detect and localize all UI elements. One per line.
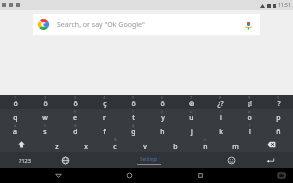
button[interactable]: ?123: [0, 152, 50, 168]
staticText: ñ: [276, 127, 281, 137]
button[interactable]: Home: [116, 168, 142, 183]
staticText: ð: [74, 123, 77, 128]
button[interactable]: š: [30, 123, 60, 137]
button[interactable]: 0: [264, 95, 293, 109]
staticText: s: [43, 127, 47, 137]
button[interactable]: á: [0, 123, 30, 137]
staticText: ō: [73, 99, 78, 109]
staticText: 2: [44, 95, 47, 100]
staticText: ü: [190, 109, 193, 114]
staticText: Settings: [140, 156, 158, 162]
staticText: 3: [74, 95, 77, 100]
button[interactable]: z: [42, 137, 71, 152]
button[interactable]: w: [30, 109, 60, 123]
button[interactable]: €: [60, 109, 90, 123]
button[interactable]: ń: [190, 137, 220, 152]
staticText: €: [74, 109, 77, 114]
button[interactable]: 1: [0, 95, 30, 109]
button[interactable]: f: [90, 123, 119, 137]
staticText: 9: [248, 95, 251, 100]
staticText: ŏ: [160, 99, 165, 109]
staticText: ó: [13, 99, 18, 109]
button[interactable]: 8: [206, 95, 235, 109]
staticText: í: [220, 109, 222, 114]
button[interactable]: Enter: [247, 152, 293, 168]
button[interactable]: í: [206, 109, 235, 123]
staticText: ?123: [19, 157, 31, 164]
staticText: i: [220, 113, 222, 123]
staticText: c: [113, 142, 117, 152]
staticText: ?: [277, 99, 281, 109]
button[interactable]: 3: [60, 95, 90, 109]
staticText: †: [132, 109, 135, 114]
button[interactable]: 6: [148, 95, 177, 109]
button[interactable]: Recent apps: [187, 168, 213, 183]
staticText: y: [161, 113, 165, 123]
button[interactable]: Voice search: [242, 19, 254, 31]
staticText: q: [13, 113, 18, 123]
staticText: m: [232, 142, 239, 152]
staticText: ô: [131, 99, 136, 109]
button[interactable]: &: [100, 137, 130, 152]
staticText: h: [160, 127, 165, 137]
staticText: Search, or say "Ok Google": [57, 20, 145, 30]
button[interactable]: q: [0, 109, 30, 123]
button[interactable]: ÿ: [148, 109, 177, 123]
button[interactable]: 5: [119, 95, 148, 109]
staticText: 8: [219, 95, 222, 100]
button[interactable]: Change language: [50, 152, 81, 168]
button[interactable]: 9: [235, 95, 264, 109]
button[interactable]: Shift: [0, 137, 42, 152]
staticText: 1: [14, 95, 17, 100]
button[interactable]: 2: [30, 95, 60, 109]
staticText: á: [14, 123, 17, 128]
button[interactable]: v: [130, 137, 160, 152]
button[interactable]: k: [206, 123, 235, 137]
staticText: a: [13, 127, 17, 137]
button[interactable]: Settings: [81, 152, 216, 168]
button[interactable]: Emoji: [216, 152, 247, 168]
staticText: t: [132, 113, 135, 123]
button[interactable]: 7: [177, 95, 206, 109]
staticText: w: [42, 113, 48, 123]
button[interactable]: ñ: [264, 123, 293, 137]
staticText: ľ: [249, 123, 251, 128]
button[interactable]: 4: [90, 95, 119, 109]
staticText: v: [143, 142, 147, 152]
staticText: ĝ: [132, 123, 135, 128]
button[interactable]: Backspace: [250, 137, 293, 152]
staticText: 5: [132, 95, 135, 100]
button[interactable]: ĝ: [119, 123, 148, 137]
staticText: ¡!: [248, 99, 252, 109]
staticText: ö: [43, 99, 48, 109]
button[interactable]: ð: [60, 123, 90, 137]
button[interactable]: j: [177, 123, 206, 137]
button[interactable]: p: [264, 109, 293, 123]
staticText: u: [189, 113, 194, 123]
staticText: f: [103, 127, 106, 137]
staticText: ¿?: [217, 99, 224, 109]
button[interactable]: Switch keyboard: [272, 168, 290, 183]
staticText: &: [114, 137, 117, 142]
button[interactable]: h: [148, 123, 177, 137]
staticText: 0: [277, 95, 280, 100]
staticText: n: [203, 142, 208, 152]
staticText: p: [276, 113, 281, 123]
staticText: g: [131, 127, 136, 137]
staticText: k: [219, 127, 223, 137]
button[interactable]: ľ: [235, 123, 264, 137]
button[interactable]: b: [160, 137, 190, 152]
staticText: 7: [190, 95, 193, 100]
button[interactable]: ü: [177, 109, 206, 123]
button[interactable]: m: [220, 137, 250, 152]
button[interactable]: Search, or say "Ok Google": [33, 14, 260, 35]
button[interactable]: ø: [235, 109, 264, 123]
button[interactable]: †: [119, 109, 148, 123]
staticText: o: [247, 113, 252, 123]
staticText: r: [103, 113, 106, 123]
button[interactable]: x: [71, 137, 100, 152]
staticText: x: [84, 142, 88, 152]
button[interactable]: Back: [45, 168, 71, 183]
staticText: 6: [161, 95, 164, 100]
button[interactable]: r: [90, 109, 119, 123]
